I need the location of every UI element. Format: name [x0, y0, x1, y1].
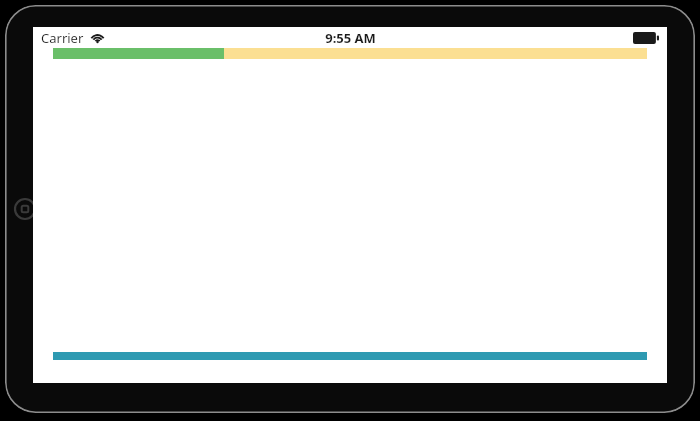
staticText: 9:55 AM — [325, 29, 376, 47]
button[interactable]: Home — [14, 198, 36, 220]
other: Battery full — [633, 32, 659, 44]
button[interactable] — [53, 48, 647, 59]
staticText: Carrier — [41, 29, 84, 47]
